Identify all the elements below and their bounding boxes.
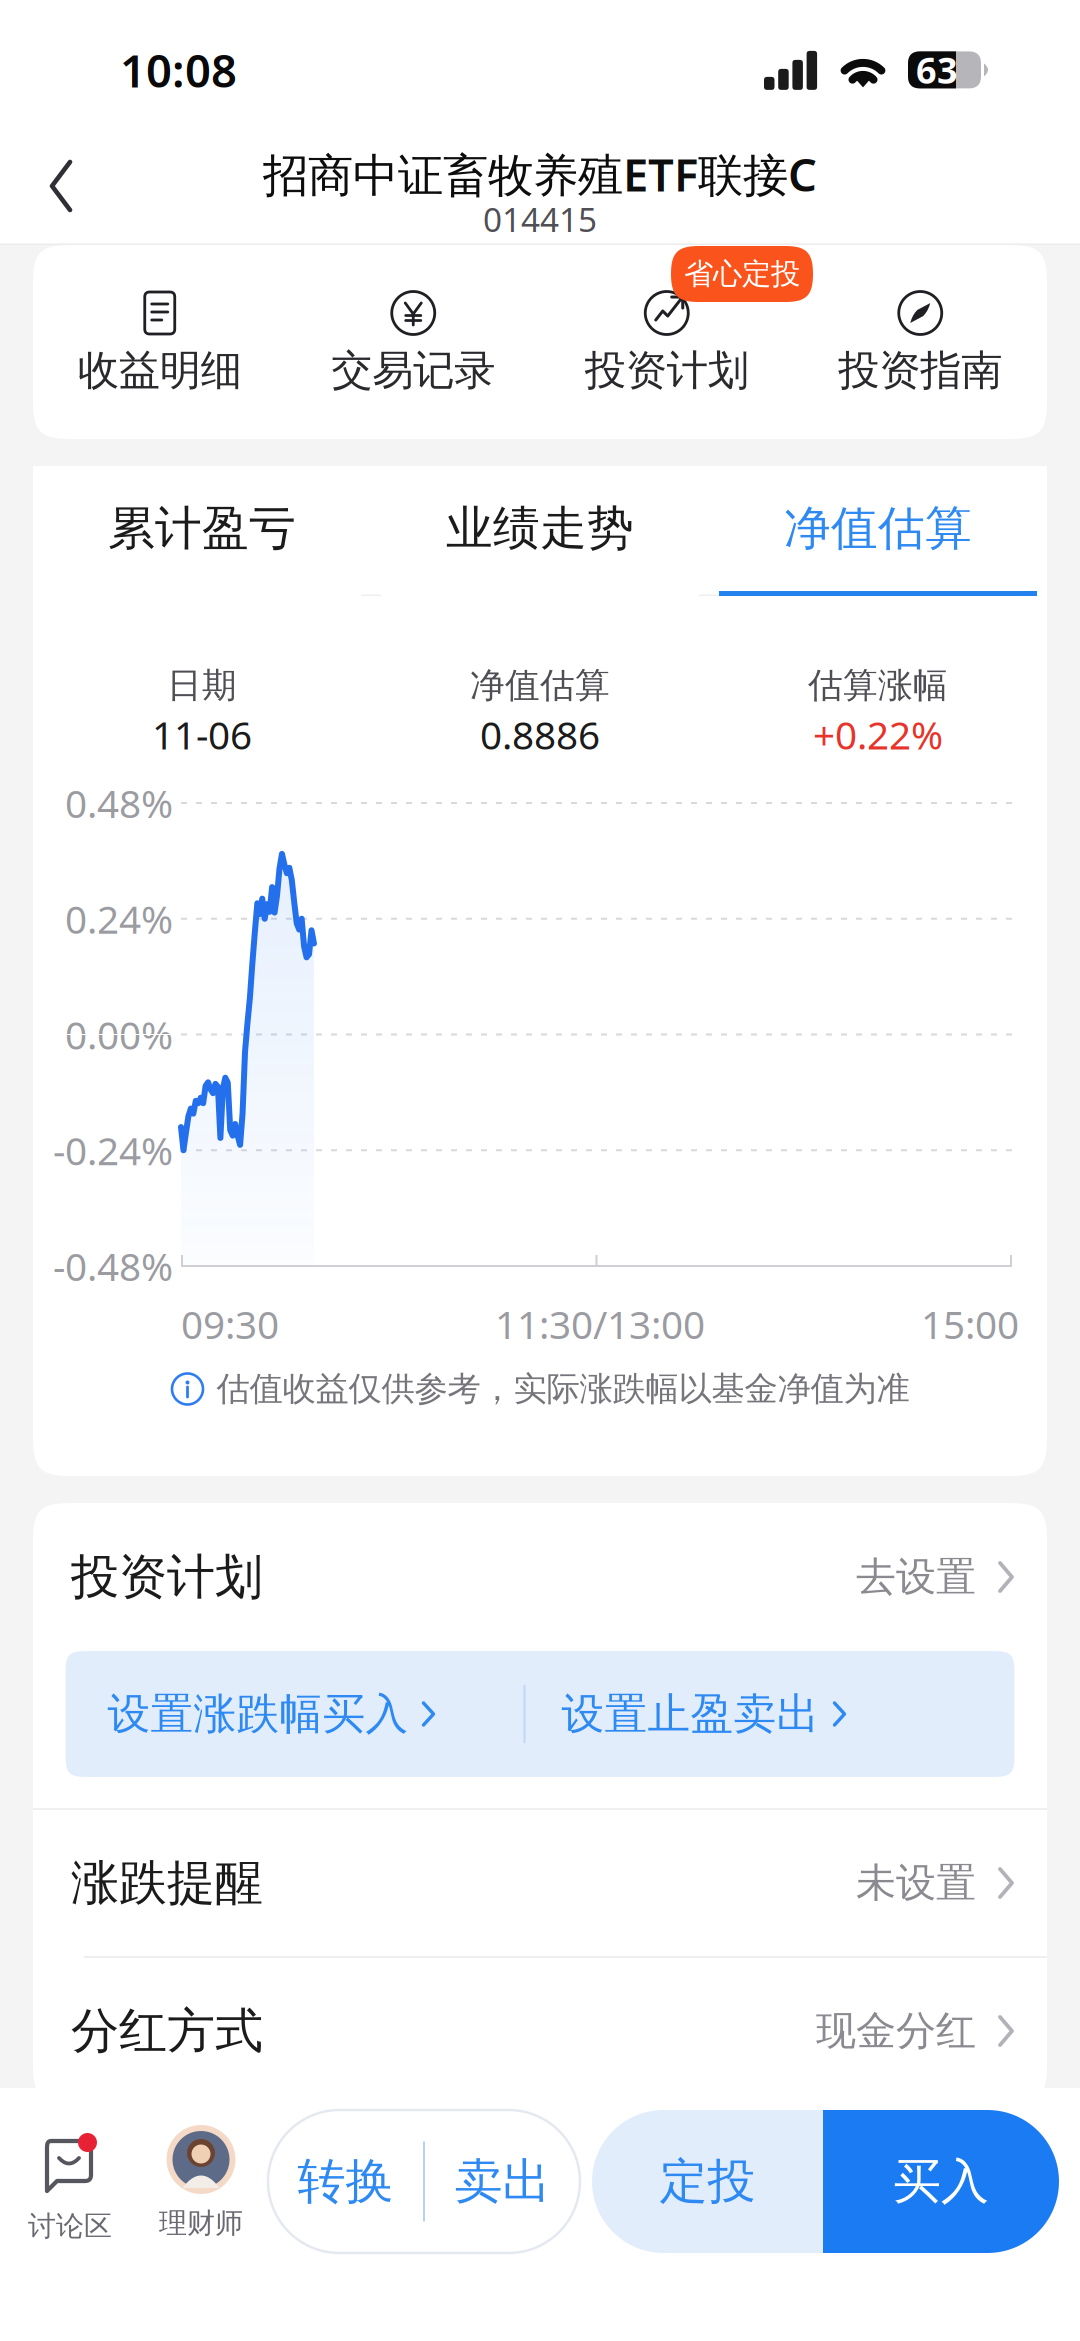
button[interactable]: 投资计划 [540, 290, 793, 396]
staticText: 投资指南 [838, 345, 1002, 396]
button[interactable]: 投资指南 [793, 290, 1047, 396]
staticText: 现金分红 [816, 2006, 976, 2055]
staticText: 设置涨跌幅买入 [107, 1688, 408, 1740]
button[interactable]: 收益明细 [33, 290, 286, 396]
staticText: 10:08 [120, 40, 237, 100]
staticText: 0.8886 [480, 709, 600, 760]
staticText: 卖出 [454, 2152, 550, 2211]
staticText: 转换 [297, 2152, 393, 2211]
staticText: 估值收益仅供参考，实际涨跌幅以基金净值为准 [216, 1368, 909, 1409]
staticText: 定投 [659, 2152, 755, 2211]
staticText: 业绩走势 [446, 500, 634, 557]
staticText: 交易记录 [331, 345, 495, 396]
button[interactable]: 定投 [592, 2110, 823, 2253]
staticText: 买入 [893, 2152, 989, 2211]
button[interactable]: 设置涨跌幅买入 [65, 1651, 523, 1777]
staticText: 讨论区 [28, 2209, 112, 2243]
staticText: 63 [916, 46, 958, 94]
staticText: 0.48% [65, 777, 173, 829]
staticText: -0.48% [53, 1240, 173, 1292]
staticText: 0.24% [65, 893, 173, 944]
staticText: 日期 [167, 664, 237, 707]
staticText: 去设置 [856, 1552, 976, 1601]
staticText: 估算涨幅 [808, 664, 948, 707]
button[interactable]: 业绩走势 [371, 466, 709, 596]
staticText: 招商中证畜牧养殖ETF联接C [263, 144, 817, 204]
staticText: 累计盈亏 [108, 500, 296, 557]
staticText: -0.24% [53, 1125, 173, 1176]
staticText: 0.00% [65, 1009, 173, 1060]
staticText: 净值估算 [470, 664, 610, 707]
staticText: 投资计划 [71, 1547, 263, 1606]
staticText: 未设置 [856, 1858, 976, 1907]
staticText: 理财师 [159, 2206, 243, 2240]
staticText: +0.22% [813, 709, 943, 760]
staticText: 09:30 [181, 1298, 279, 1350]
staticText: 014415 [483, 197, 597, 241]
staticText: 15:00 [921, 1298, 1019, 1350]
button[interactable]: 转换 [268, 2110, 423, 2253]
staticText: 11-06 [152, 709, 252, 760]
button[interactable]: 涨跌提醒 [33, 1810, 1047, 1956]
button[interactable]: 卖出 [425, 2110, 580, 2253]
staticText: 涨跌提醒 [71, 1853, 263, 1912]
button[interactable]: 买入 [823, 2110, 1059, 2253]
staticText: 11:30/13:00 [495, 1298, 705, 1350]
staticText: 投资计划 [585, 345, 749, 396]
button[interactable]: 交易记录 [286, 290, 540, 396]
button[interactable]: 净值估算 [709, 466, 1047, 596]
staticText: 分红方式 [71, 2001, 263, 2060]
staticText: 省心定投 [684, 256, 800, 292]
button[interactable]: 投资计划 [33, 1503, 1047, 1651]
button[interactable]: 累计盈亏 [33, 466, 371, 596]
button[interactable]: 讨论区 [0, 2088, 140, 2341]
button[interactable]: Back [0, 126, 110, 245]
button[interactable]: 理财师 [136, 2088, 266, 2341]
button[interactable]: 分红方式 [33, 1958, 1047, 2104]
staticText: 设置止盈卖出 [561, 1688, 819, 1740]
staticText: 收益明细 [78, 345, 242, 396]
button[interactable]: 设置止盈卖出 [525, 1651, 1014, 1777]
staticText: 净值估算 [784, 500, 972, 557]
